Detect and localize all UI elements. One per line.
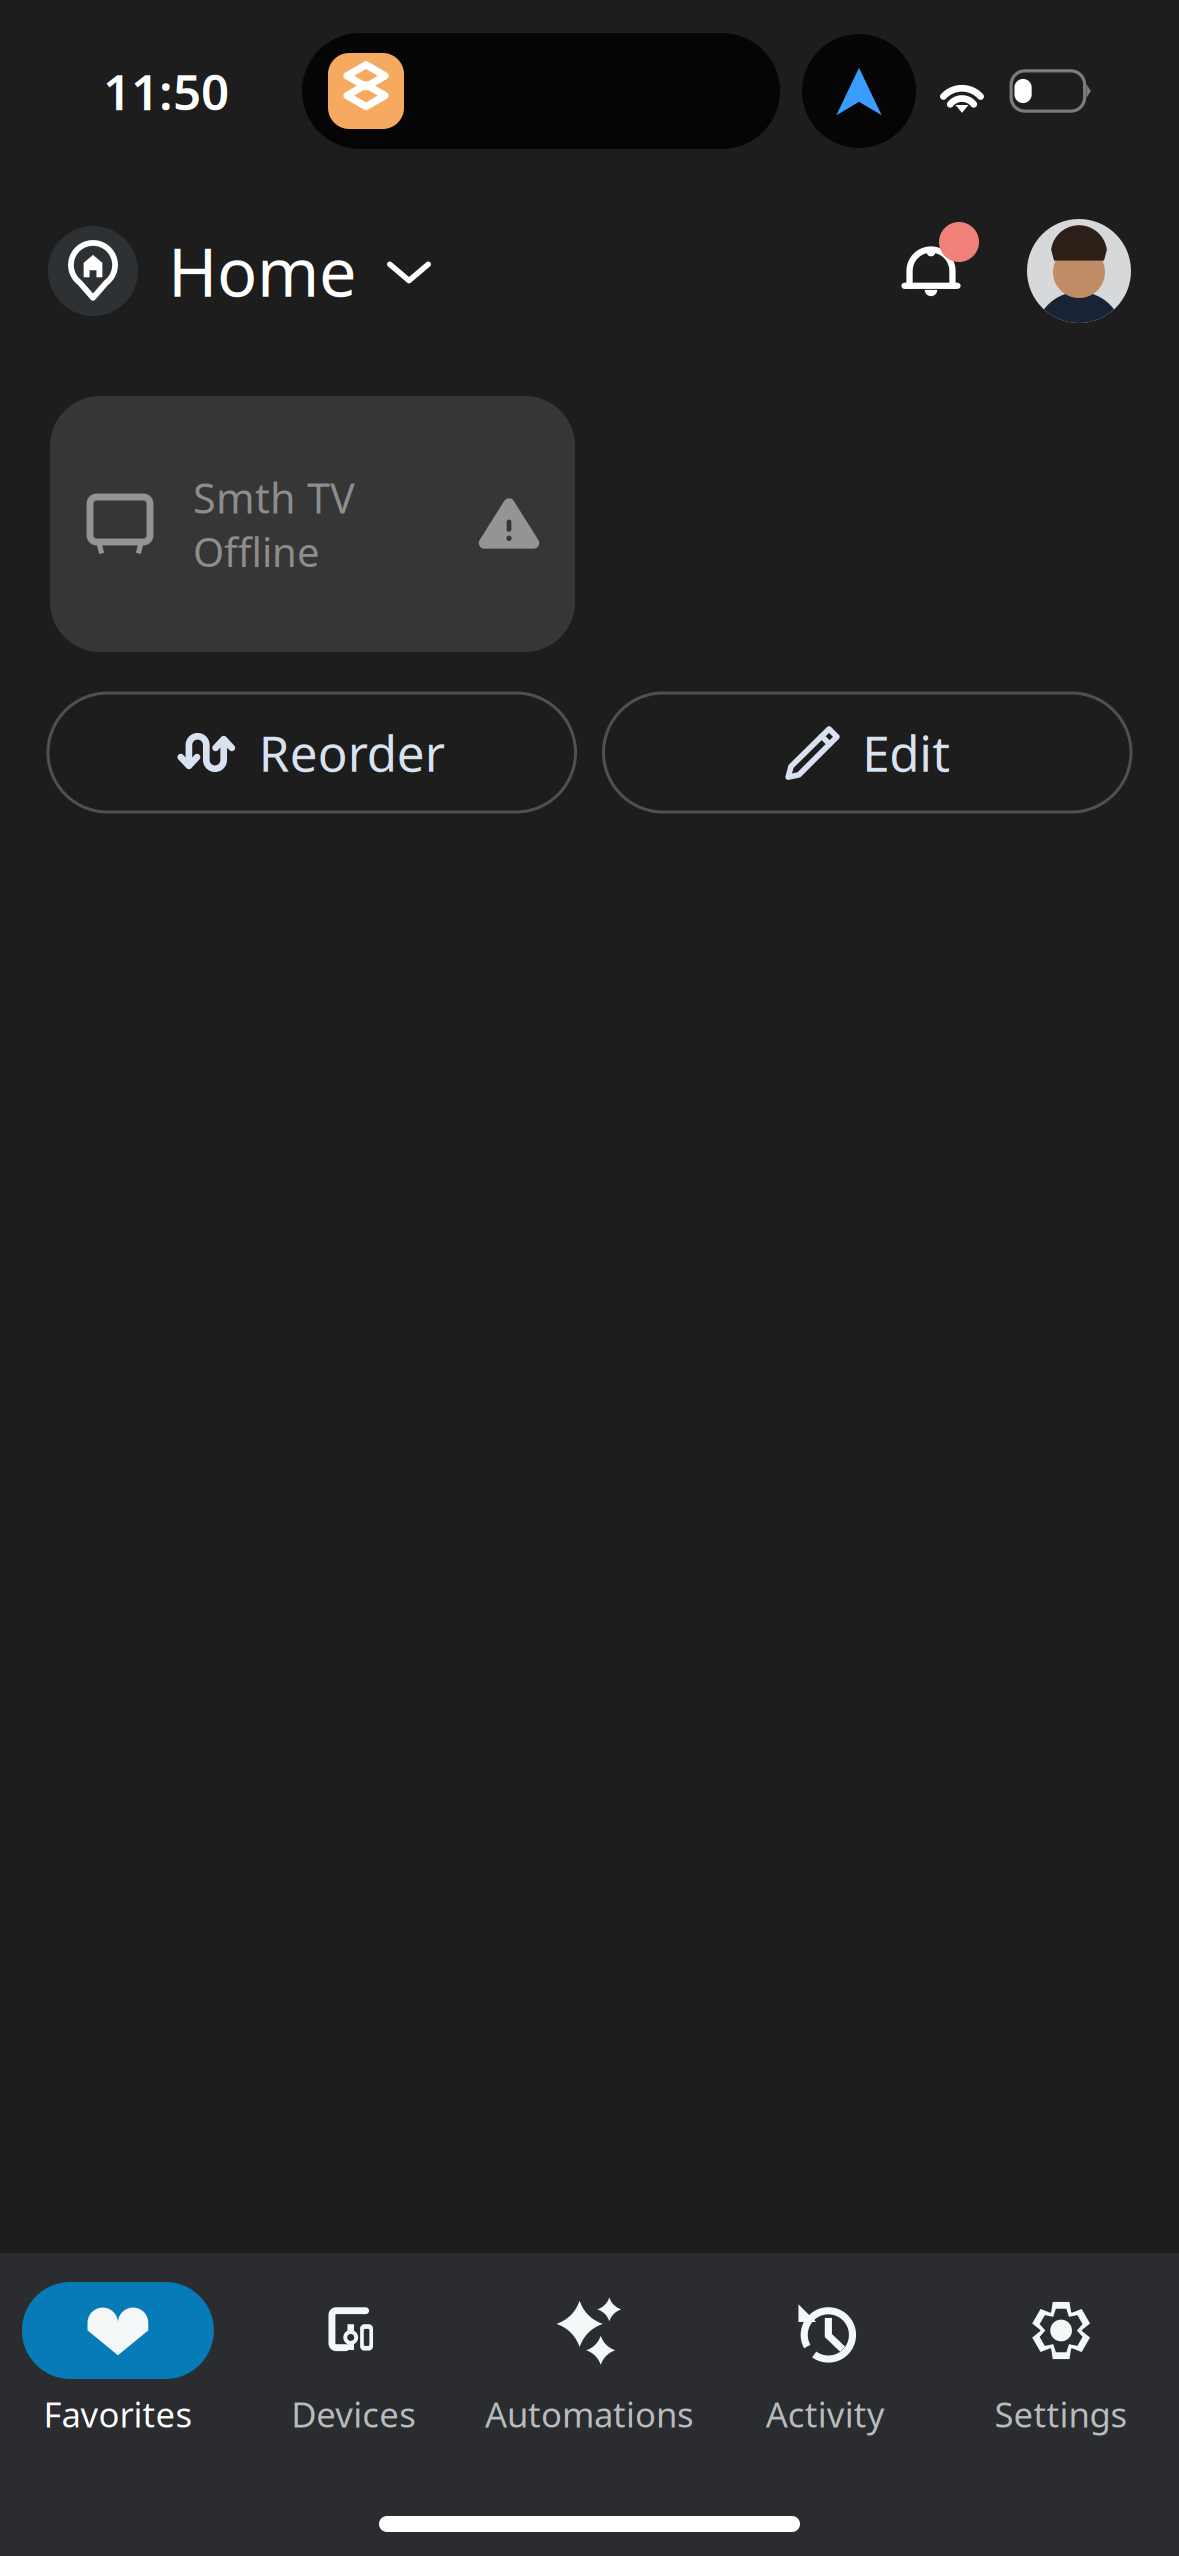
button[interactable]: Notifications	[877, 217, 985, 325]
button[interactable]: Edit	[603, 693, 1131, 812]
button[interactable]: Smth TV	[50, 396, 575, 652]
staticText: Activity	[766, 2391, 885, 2437]
staticText: Reorder	[259, 720, 445, 785]
button[interactable]: Devices	[236, 2282, 472, 2437]
button[interactable]: Home	[48, 226, 433, 316]
button[interactable]: Favorites	[0, 2282, 236, 2437]
staticText: Edit	[862, 720, 950, 785]
staticText: Home	[168, 227, 357, 315]
staticText: Offline	[193, 525, 320, 578]
button[interactable]: Settings	[943, 2282, 1179, 2437]
button[interactable]: Profile	[1027, 219, 1131, 323]
staticText: Favorites	[43, 2391, 192, 2437]
button[interactable]: Activity	[707, 2282, 943, 2437]
staticText: Devices	[291, 2391, 416, 2437]
staticText: Automations	[485, 2391, 694, 2437]
staticText: Settings	[995, 2391, 1128, 2437]
button[interactable]: Reorder	[48, 693, 575, 812]
staticText: Smth TV	[193, 470, 355, 525]
staticText: 11:50	[103, 58, 229, 124]
button[interactable]: Automations	[472, 2282, 707, 2437]
